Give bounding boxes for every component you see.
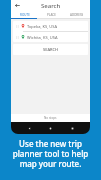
button[interactable]: Recents bbox=[69, 125, 76, 132]
button[interactable]: ROUTE bbox=[11, 11, 38, 18]
staticText: Search bbox=[41, 2, 61, 10]
staticText: PLACE bbox=[47, 13, 56, 17]
staticText: Wichita, KS, USA bbox=[27, 35, 58, 40]
staticText: No stops bbox=[44, 116, 57, 120]
button[interactable]: Home bbox=[47, 125, 54, 132]
button[interactable]: Topeka, KS, USA bbox=[13, 21, 88, 31]
button[interactable]: Back bbox=[13, 1, 22, 10]
staticText: Topeka, KS, USA bbox=[27, 24, 58, 29]
staticText: ADDRESS bbox=[70, 13, 84, 17]
button[interactable]: No stops bbox=[11, 114, 90, 122]
staticText: Use the new trip planner tool to help ma… bbox=[6, 138, 95, 169]
button[interactable]: Wichita, KS, USA bbox=[13, 32, 88, 42]
button[interactable]: PLACE bbox=[38, 11, 64, 18]
staticText: ROUTE bbox=[20, 13, 30, 17]
staticText: SEARCH bbox=[43, 47, 59, 52]
button[interactable]: Back bbox=[26, 125, 33, 132]
button[interactable]: ADDRESS bbox=[64, 11, 90, 18]
button[interactable]: SEARCH bbox=[13, 44, 88, 55]
